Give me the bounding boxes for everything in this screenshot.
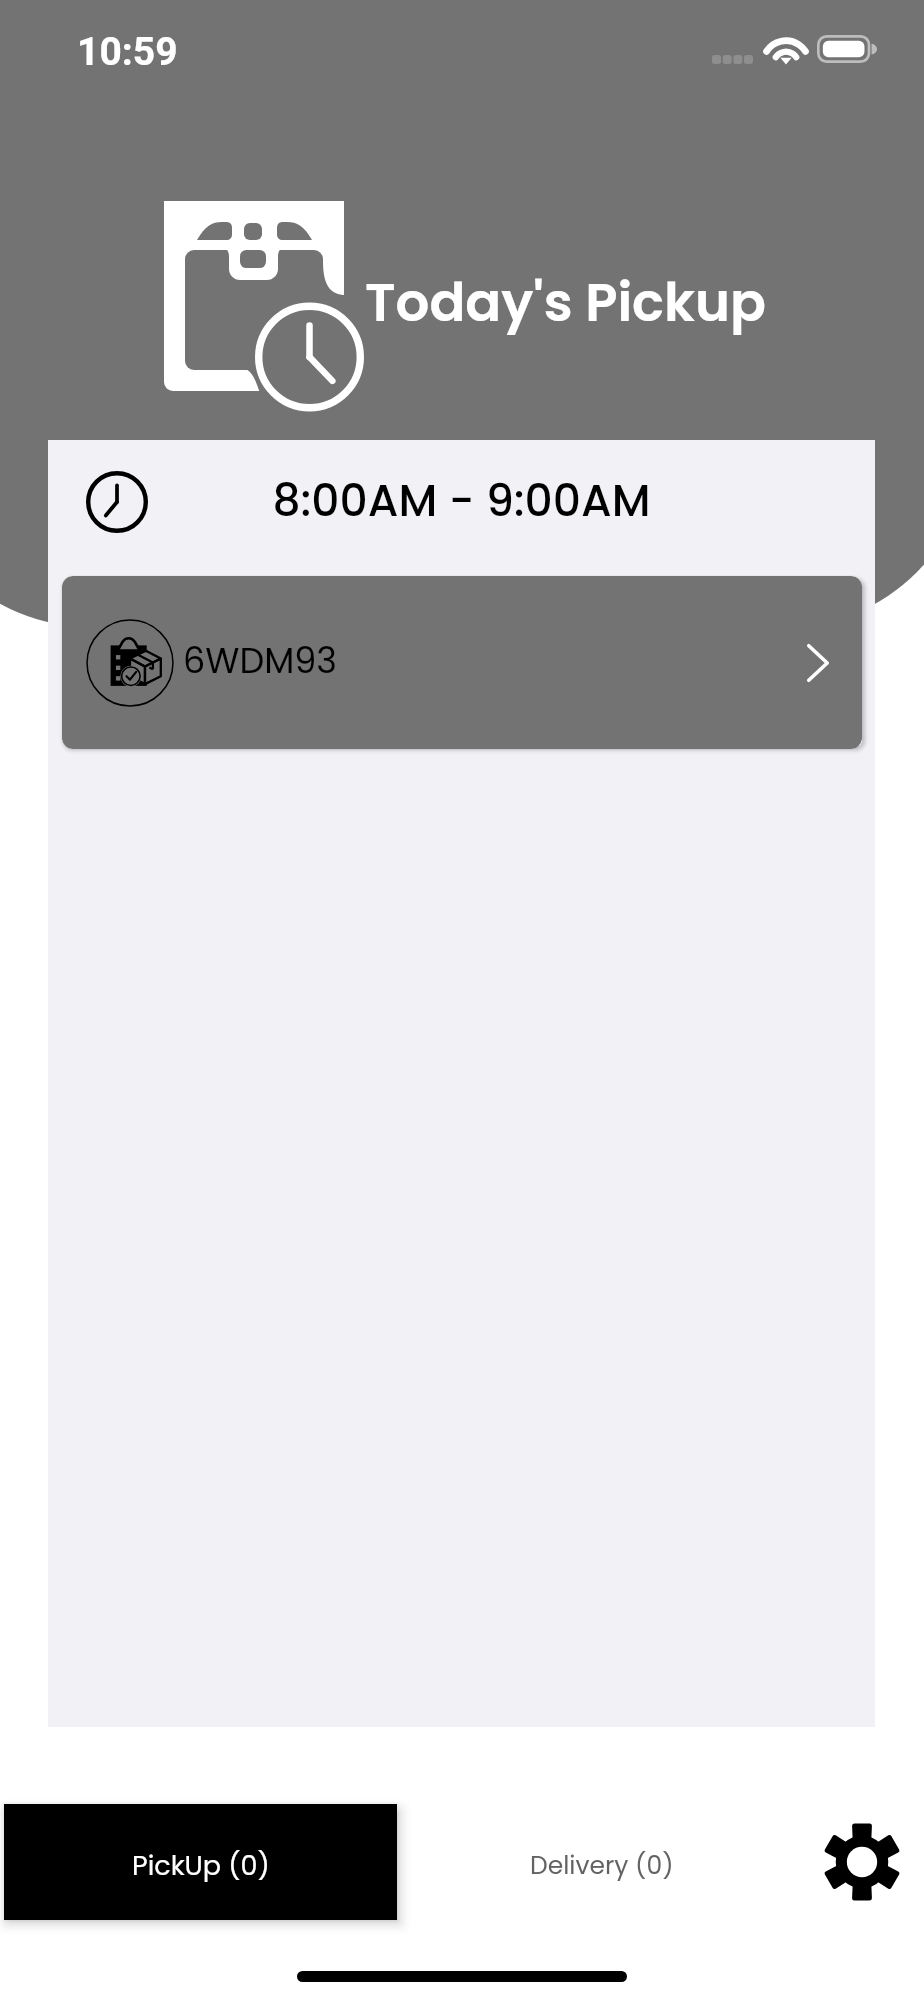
staticText: 8:00AM - 9:00AM — [48, 470, 875, 532]
staticText: Today's Pickup — [365, 265, 766, 339]
staticText: 10:59 — [77, 29, 178, 75]
staticText: PickUp (0) — [132, 1847, 270, 1885]
button[interactable]: Delivery (0) — [399, 1803, 799, 1920]
staticText: 6WDM93 — [183, 636, 337, 685]
button[interactable]: 6WDM93 — [62, 576, 862, 749]
staticText: Delivery (0) — [530, 1848, 674, 1883]
button[interactable]: PickUp (0) — [4, 1804, 397, 1920]
button[interactable]: Settings — [799, 1803, 924, 1920]
